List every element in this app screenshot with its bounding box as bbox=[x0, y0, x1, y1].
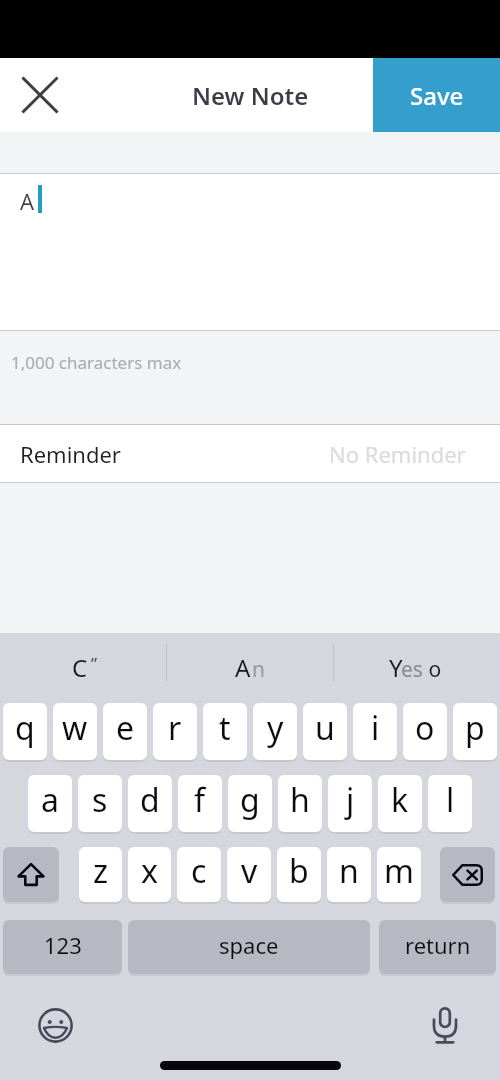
staticText: e bbox=[116, 706, 135, 750]
staticText: return bbox=[405, 930, 471, 960]
button[interactable]: x bbox=[128, 847, 171, 902]
button[interactable]: space bbox=[128, 920, 370, 974]
staticText: o bbox=[415, 706, 435, 750]
button[interactable]: v bbox=[227, 847, 271, 902]
button[interactable]: Y bbox=[333, 638, 500, 697]
button[interactable]: b bbox=[277, 847, 321, 902]
staticText: l bbox=[446, 778, 455, 822]
staticText: m bbox=[384, 849, 414, 893]
button[interactable]: l bbox=[428, 775, 472, 832]
staticText: x bbox=[141, 849, 158, 893]
staticText: f bbox=[194, 778, 206, 822]
button[interactable]: g bbox=[228, 775, 272, 832]
button[interactable]: r bbox=[153, 703, 197, 760]
staticText: 123 bbox=[44, 930, 82, 960]
staticText: ” bbox=[91, 652, 98, 675]
staticText: p bbox=[465, 706, 485, 750]
button[interactable]: Reminder bbox=[0, 425, 500, 482]
button[interactable]: Close bbox=[0, 58, 80, 132]
staticText: n bbox=[339, 849, 359, 893]
staticText: d bbox=[140, 778, 160, 822]
staticText: c bbox=[191, 849, 207, 893]
staticText: a bbox=[41, 778, 59, 822]
button[interactable]: Backspace bbox=[440, 847, 495, 902]
staticText: z bbox=[93, 849, 109, 893]
button[interactable]: i bbox=[353, 703, 397, 760]
button[interactable]: d bbox=[128, 775, 172, 832]
staticText: o bbox=[423, 655, 442, 684]
staticText: b bbox=[289, 849, 309, 893]
button[interactable]: w bbox=[53, 703, 97, 760]
staticText: No Reminder bbox=[329, 439, 466, 469]
button[interactable]: z bbox=[79, 847, 122, 902]
staticText: C bbox=[72, 651, 88, 684]
button[interactable]: k bbox=[378, 775, 422, 832]
button[interactable]: y bbox=[253, 703, 297, 760]
staticText: space bbox=[219, 930, 279, 960]
staticText: j bbox=[346, 778, 355, 822]
button[interactable]: Shift bbox=[3, 847, 59, 902]
staticText: k bbox=[391, 778, 409, 822]
button[interactable]: a bbox=[28, 775, 72, 832]
staticText: es bbox=[401, 655, 423, 684]
staticText: i bbox=[371, 706, 380, 750]
button[interactable]: A bbox=[0, 174, 500, 330]
staticText: s bbox=[92, 778, 108, 822]
button[interactable]: h bbox=[278, 775, 322, 832]
staticText: w bbox=[62, 706, 88, 750]
staticText: Y bbox=[389, 651, 403, 684]
button[interactable]: n bbox=[327, 847, 371, 902]
button[interactable]: u bbox=[303, 703, 347, 760]
staticText: New Note bbox=[192, 79, 309, 112]
button[interactable]: m bbox=[377, 847, 421, 902]
staticText: y bbox=[267, 706, 284, 750]
button[interactable]: C bbox=[0, 638, 166, 697]
staticText: A bbox=[235, 651, 251, 684]
button[interactable]: s bbox=[78, 775, 122, 832]
button[interactable]: c bbox=[177, 847, 221, 902]
button[interactable]: t bbox=[203, 703, 247, 760]
button[interactable]: j bbox=[328, 775, 372, 832]
button[interactable]: f bbox=[178, 775, 222, 832]
button[interactable]: q bbox=[3, 703, 47, 760]
staticText: Save bbox=[410, 79, 464, 112]
staticText: q bbox=[15, 706, 35, 750]
staticText: t bbox=[219, 706, 231, 750]
button[interactable]: return bbox=[379, 920, 496, 974]
staticText: v bbox=[241, 849, 258, 893]
staticText: r bbox=[168, 706, 182, 750]
staticText: g bbox=[240, 778, 260, 822]
button[interactable]: p bbox=[453, 703, 497, 760]
button[interactable]: o bbox=[403, 703, 447, 760]
button[interactable]: e bbox=[103, 703, 147, 760]
staticText: Reminder bbox=[20, 439, 121, 469]
button[interactable]: A bbox=[166, 638, 333, 697]
staticText: h bbox=[290, 778, 310, 822]
staticText: n bbox=[252, 655, 265, 684]
button[interactable]: Emoji keyboard bbox=[30, 1000, 80, 1050]
button[interactable]: 123 bbox=[3, 920, 122, 974]
staticText: 1,000 characters max bbox=[11, 351, 182, 374]
staticText: A bbox=[20, 186, 35, 216]
button[interactable]: Dictation bbox=[420, 1000, 470, 1050]
staticText: u bbox=[315, 706, 335, 750]
button[interactable]: Save bbox=[373, 58, 500, 132]
